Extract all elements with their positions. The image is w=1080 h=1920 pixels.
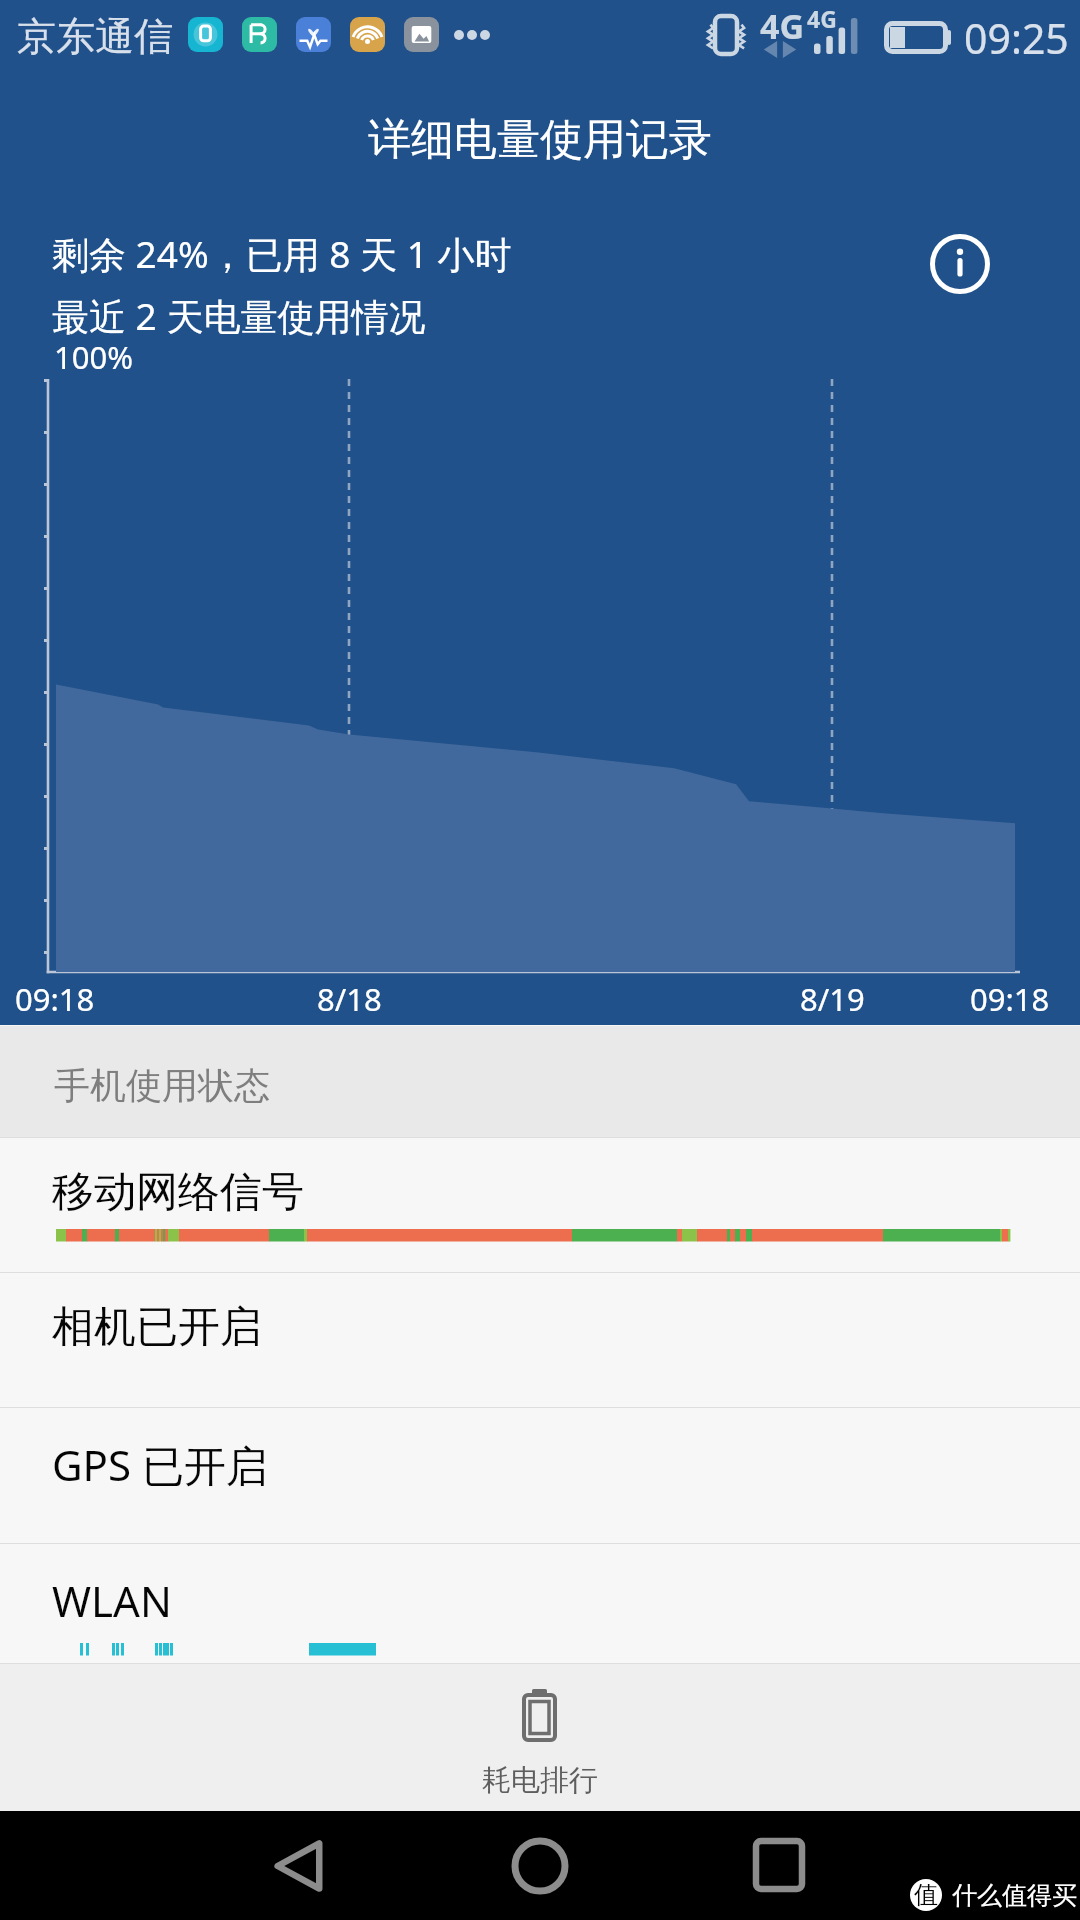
staticText: 8/19 <box>800 978 865 1020</box>
staticText: 手机使用状态 <box>54 1063 270 1108</box>
staticText: 相机已开启 <box>52 1301 262 1354</box>
staticText: 8/18 <box>317 978 382 1020</box>
staticText: 详细电量使用记录 <box>368 113 712 167</box>
button[interactable]: Recents <box>700 1811 860 1920</box>
button[interactable]: Home <box>460 1811 620 1920</box>
staticText: 最近 2 天电量使用情况 <box>52 290 426 341</box>
button[interactable]: WLAN <box>0 1543 1080 1663</box>
staticText: 4G <box>807 3 837 34</box>
staticText: 09:25 <box>964 10 1069 66</box>
staticText: 100% <box>54 336 133 378</box>
staticText: 耗电排行 <box>482 1762 598 1799</box>
staticText: 什么值得买 <box>952 1880 1077 1911</box>
staticText: GPS 已开启 <box>52 1436 268 1493</box>
button[interactable]: GPS 已开启 <box>0 1407 1080 1543</box>
staticText: 4G <box>760 3 805 49</box>
button[interactable]: 相机已开启 <box>0 1272 1080 1407</box>
button[interactable]: Info <box>906 210 1014 318</box>
button[interactable]: 耗电排行 <box>0 1663 1080 1811</box>
staticText: 京东通信 <box>17 12 173 61</box>
button[interactable]: 移动网络信号 <box>0 1137 1080 1272</box>
staticText: WLAN <box>52 1572 172 1629</box>
staticText: 剩余 24%，已用 8 天 1 小时 <box>52 228 512 279</box>
staticText: 09:18 <box>970 978 1050 1020</box>
staticText: 09:18 <box>15 978 95 1020</box>
staticText: 移动网络信号 <box>52 1166 304 1219</box>
button[interactable]: Back <box>220 1811 380 1920</box>
staticText: 值 <box>914 1880 938 1910</box>
